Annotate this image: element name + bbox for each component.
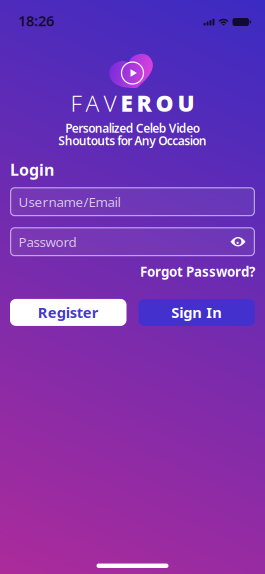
staticText: Personalized Celeb Video [65, 120, 200, 136]
button[interactable]: Register [10, 299, 126, 326]
staticText: Username/Email [18, 193, 120, 211]
button[interactable]: Password [10, 227, 255, 256]
button[interactable]: Username/Email [10, 187, 255, 216]
staticText: Shoutouts for Any Occasion [58, 132, 207, 148]
button[interactable]: Sign In [138, 299, 255, 326]
staticText: Forgot Password? [140, 263, 255, 280]
button[interactable]: Forgot Password? [140, 263, 255, 280]
staticText: Password [18, 233, 76, 251]
staticText: Register [38, 303, 99, 322]
staticText: Login [10, 159, 54, 180]
staticText: F A V E R O U [70, 88, 194, 118]
staticText: Sign In [171, 303, 222, 322]
button[interactable]: Show password [227, 233, 249, 251]
staticText: 18:26 [18, 11, 54, 30]
